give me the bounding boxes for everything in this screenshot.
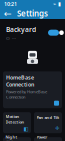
staticText: ▭ — [6, 36, 10, 40]
staticText: Power Manager — [36, 134, 54, 141]
staticText: 10:21 — [4, 0, 17, 8]
button[interactable]: Night Vision — [3, 137, 31, 141]
staticText: Motion Detection — [5, 114, 24, 124]
staticText: Night Vision — [5, 134, 17, 141]
button[interactable]: Back — [2, 7, 14, 19]
staticText: ← — [4, 8, 12, 19]
button[interactable]: Power Manager — [34, 137, 62, 141]
staticText: ◧ — [23, 126, 28, 132]
button[interactable]: Backyard — [3, 22, 62, 43]
button[interactable]: Pan and Tilt — [34, 112, 62, 133]
staticText: HomeBase Connection — [6, 74, 34, 88]
staticText: ⌁ ▮ — [53, 1, 61, 7]
staticText: Backyard — [6, 25, 36, 34]
staticText: Powered by HomeBase Connection — [6, 89, 47, 100]
staticText: Settings — [17, 8, 48, 19]
button[interactable]: HomeBase Connection — [3, 71, 62, 108]
button[interactable]: Motion Detection — [3, 112, 31, 133]
staticText: ✛ — [55, 125, 59, 131]
staticText: Pan and Tilt — [36, 115, 59, 120]
staticText: ⋯ — [12, 36, 16, 40]
